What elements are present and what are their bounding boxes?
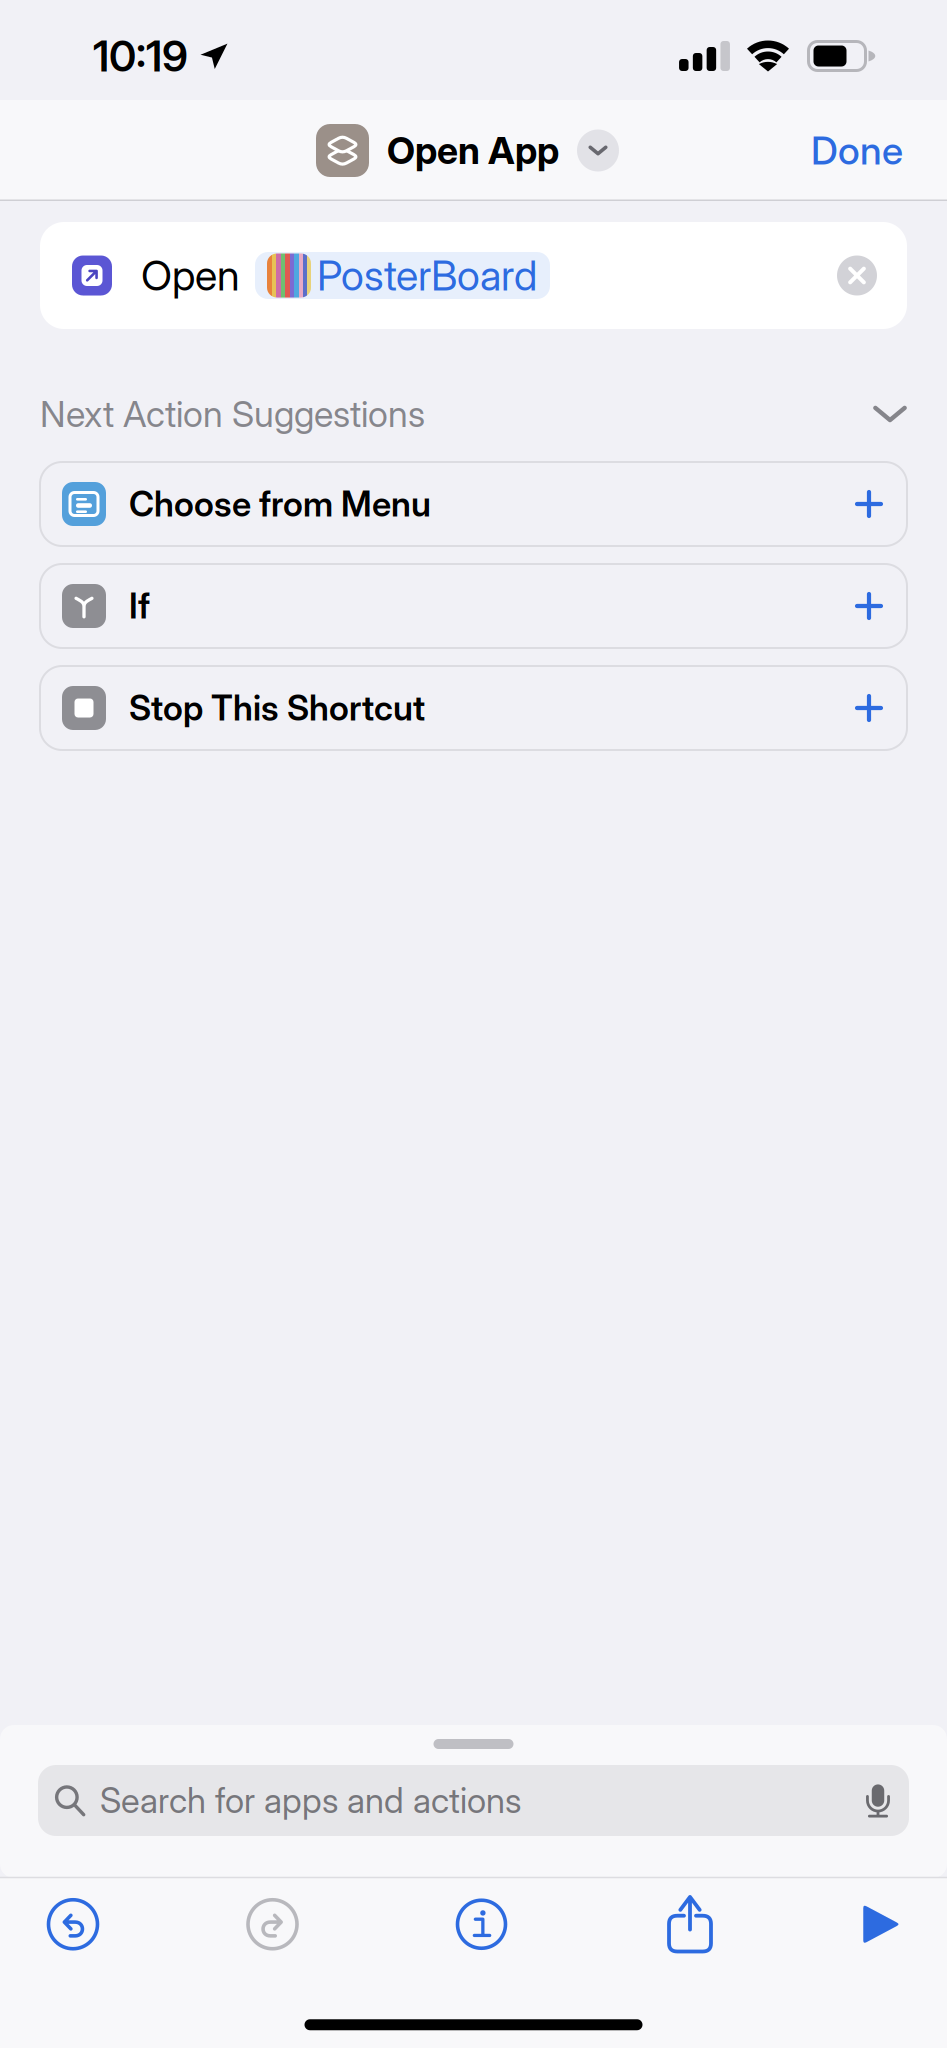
button[interactable]: If xyxy=(40,564,907,648)
staticText: Done xyxy=(811,127,903,174)
staticText: 10:19 xyxy=(93,30,188,82)
button[interactable]: Search for apps and actions xyxy=(0,1765,947,1836)
staticText: Open App xyxy=(387,128,559,173)
staticText: If xyxy=(129,585,150,627)
button[interactable]: Details xyxy=(399,1878,564,1970)
button[interactable]: Choose from Menu xyxy=(40,462,907,546)
staticText: PosterBoard xyxy=(317,250,537,300)
staticText: Choose from Menu xyxy=(129,483,431,525)
button[interactable]: Stop This Shortcut xyxy=(40,666,907,750)
button[interactable]: Open xyxy=(40,222,907,329)
button[interactable]: Done xyxy=(791,115,923,186)
button[interactable]: Next Action Suggestions xyxy=(40,391,907,437)
button[interactable]: Redo xyxy=(146,1878,399,1970)
staticText: Open xyxy=(141,250,240,300)
button[interactable]: Undo xyxy=(0,1878,146,1970)
staticText: Search for apps and actions xyxy=(100,1779,521,1821)
staticText: Stop This Shortcut xyxy=(129,687,425,729)
button[interactable]: Share xyxy=(564,1878,816,1970)
staticText: Next Action Suggestions xyxy=(40,392,425,436)
button[interactable]: Run xyxy=(816,1878,947,1970)
button[interactable]: Open App xyxy=(316,124,619,177)
